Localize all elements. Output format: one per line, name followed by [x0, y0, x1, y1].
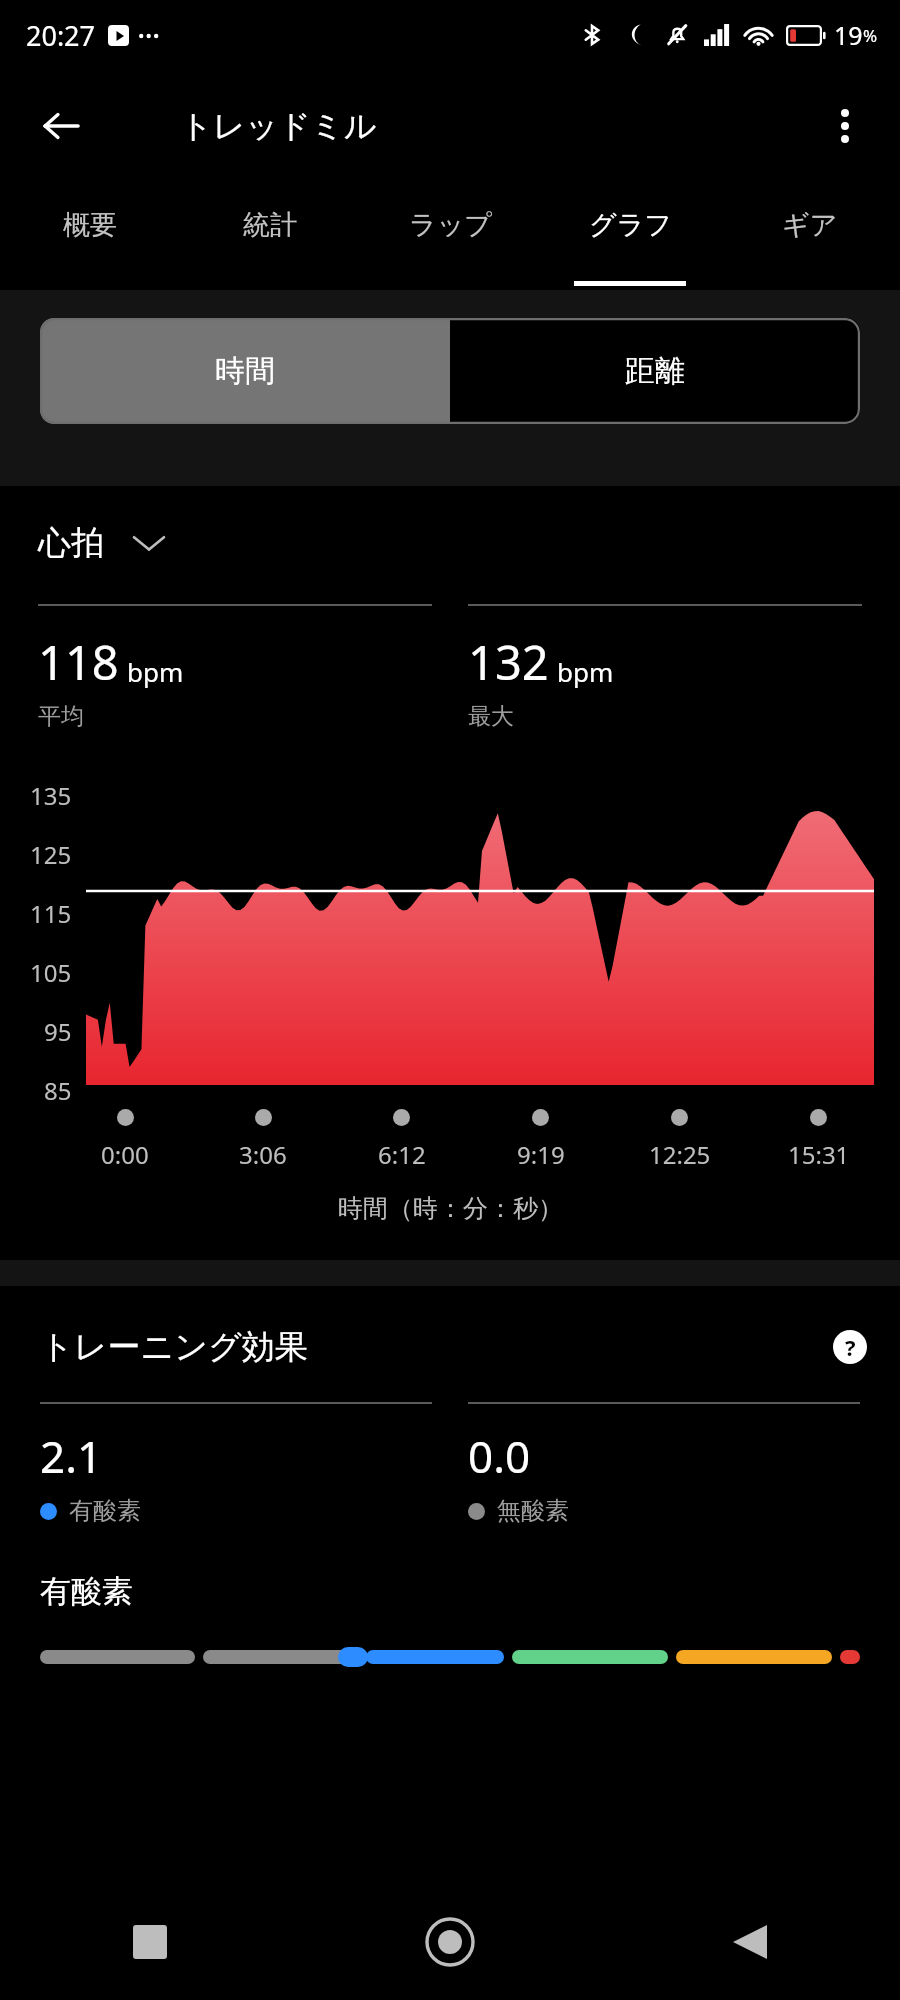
button[interactable]: ラップ — [360, 182, 540, 290]
button[interactable]: Recent apps — [0, 1884, 300, 2000]
staticText: 125 — [30, 838, 72, 871]
button[interactable]: グラフ — [540, 182, 720, 290]
staticText: グラフ — [589, 208, 672, 242]
staticText: ギア — [782, 208, 838, 242]
staticText: 135 — [30, 779, 72, 812]
staticText: トレッドミル — [180, 106, 377, 146]
staticText: 0.0 — [468, 1426, 531, 1486]
staticText: 105 — [30, 956, 72, 989]
staticText: 118 — [38, 630, 119, 694]
button[interactable]: Back — [600, 1884, 900, 2000]
staticText: 115 — [30, 897, 72, 930]
button[interactable]: Back — [26, 91, 96, 161]
staticText: 最大 — [468, 702, 514, 731]
button[interactable]: 心拍 — [38, 522, 164, 564]
button[interactable]: 概要 — [0, 182, 180, 290]
staticText: 有酸素 — [69, 1496, 141, 1526]
staticText: 132 — [468, 630, 549, 694]
staticText: ? — [845, 1332, 856, 1362]
staticText: 19 — [834, 18, 863, 52]
staticText: 心拍 — [38, 522, 104, 564]
staticText: 2.1 — [40, 1426, 103, 1486]
staticText: 時間（時：分：秒） — [338, 1193, 563, 1224]
staticText: 0:00 — [101, 1138, 149, 1171]
staticText: 時間 — [215, 352, 275, 390]
button[interactable]: Home — [300, 1884, 600, 2000]
staticText: 無酸素 — [497, 1496, 569, 1526]
staticText: 統計 — [243, 208, 297, 242]
staticText: 20:27 — [26, 17, 96, 54]
staticText: 概要 — [63, 208, 117, 242]
staticText: 12:25 — [649, 1138, 711, 1171]
staticText: 距離 — [625, 352, 685, 390]
button[interactable]: ギア — [720, 182, 900, 290]
button[interactable]: Help — [830, 1327, 870, 1367]
staticText: 平均 — [38, 702, 84, 731]
staticText: ラップ — [409, 208, 492, 242]
staticText: 15:31 — [788, 1138, 850, 1171]
button[interactable]: More options — [812, 93, 878, 159]
staticText: 95 — [44, 1015, 72, 1048]
button[interactable]: 統計 — [180, 182, 360, 290]
staticText: 有酸素 — [40, 1572, 133, 1611]
staticText: bpm — [127, 654, 184, 689]
button[interactable]: 時間 — [40, 318, 450, 424]
button[interactable]: 距離 — [450, 318, 860, 424]
staticText: % — [863, 24, 878, 47]
staticText: bpm — [557, 654, 614, 689]
staticText: 85 — [44, 1074, 72, 1107]
staticText: トレーニング効果 — [40, 1326, 308, 1368]
staticText: 9:19 — [517, 1138, 565, 1171]
staticText: 6:12 — [378, 1138, 426, 1171]
staticText: 3:06 — [239, 1138, 287, 1171]
